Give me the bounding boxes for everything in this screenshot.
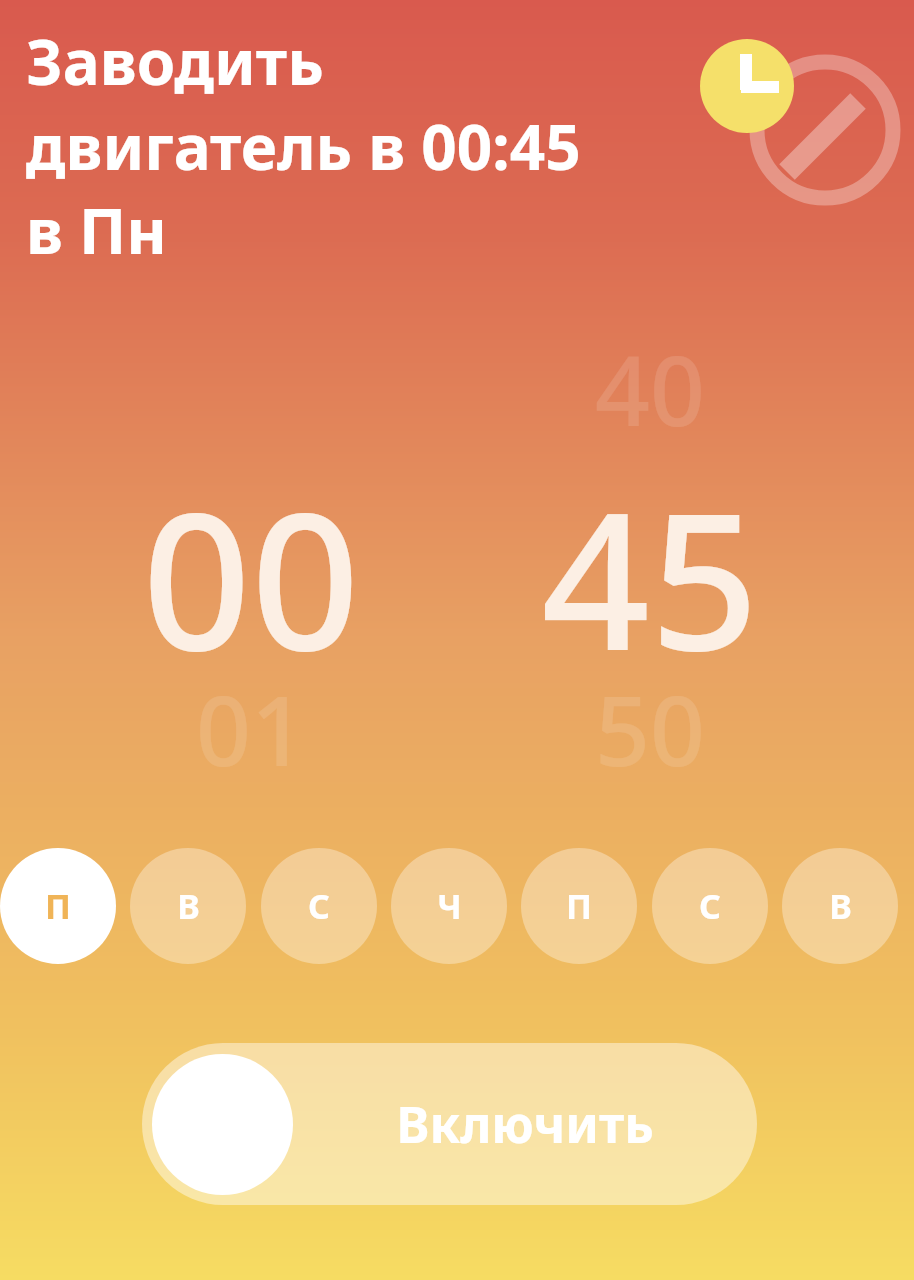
staticText: Включить — [396, 1090, 654, 1158]
staticText: 40 — [595, 323, 705, 454]
staticText: П — [566, 883, 592, 929]
staticText: П — [45, 883, 71, 929]
button[interactable]: С — [261, 848, 377, 964]
button[interactable]: Включить — [142, 1043, 757, 1205]
staticText: Ч — [437, 883, 462, 929]
staticText: 00 — [142, 447, 360, 677]
staticText: В — [177, 883, 200, 929]
staticText: В — [829, 883, 852, 929]
button[interactable]: В — [782, 848, 898, 964]
staticText: Заводить — [26, 19, 324, 103]
staticText: С — [699, 883, 721, 929]
staticText: в Пн — [26, 188, 167, 258]
staticText: 01 — [196, 663, 306, 794]
button[interactable]: 45 — [480, 447, 820, 677]
staticText: 45 — [541, 447, 759, 677]
staticText: С — [308, 883, 330, 929]
button[interactable]: Ч — [391, 848, 507, 964]
button[interactable]: П — [521, 848, 637, 964]
button[interactable]: С — [652, 848, 768, 964]
button[interactable]: 00 — [81, 447, 421, 677]
button[interactable]: В — [130, 848, 246, 964]
staticText: 50 — [595, 663, 705, 794]
button[interactable]: Таймер — [690, 20, 905, 220]
staticText: двигатель в 00:45 — [26, 104, 581, 188]
button[interactable]: П — [0, 848, 116, 964]
